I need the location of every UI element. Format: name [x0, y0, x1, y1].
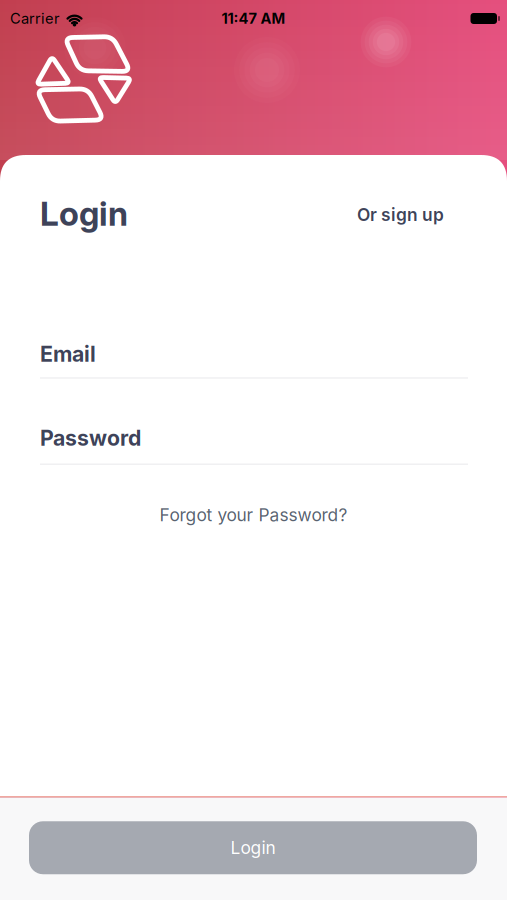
- staticText: Email: [40, 341, 96, 366]
- staticText: 11:47 AM: [221, 10, 285, 27]
- staticText: Carrier: [10, 10, 60, 27]
- staticText: Password: [40, 425, 141, 451]
- button[interactable]: Login: [29, 821, 477, 874]
- button[interactable]: Forgot your Password?: [159, 505, 347, 525]
- staticText: Or sign up: [357, 204, 444, 225]
- staticText: Forgot your Password?: [159, 505, 347, 525]
- button[interactable]: Or sign up: [357, 204, 444, 225]
- staticText: Login: [40, 194, 128, 233]
- staticText: Login: [230, 837, 275, 858]
